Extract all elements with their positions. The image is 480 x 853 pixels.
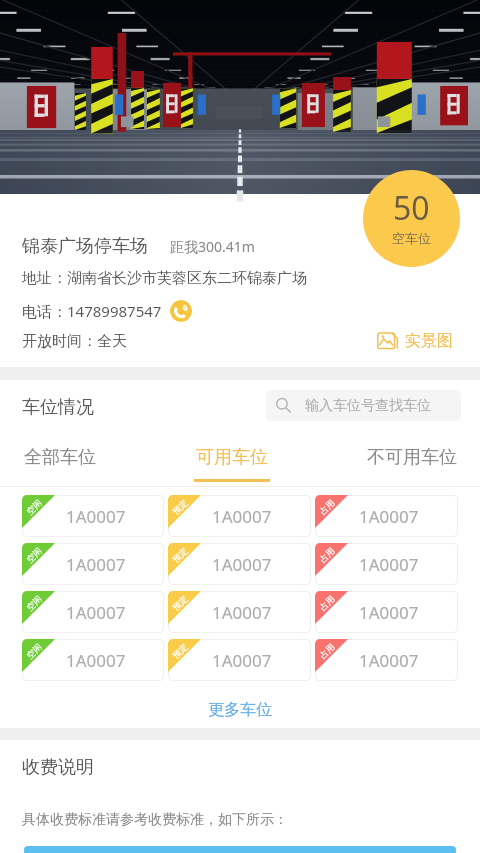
staticText: 1A0007 [212,601,272,624]
staticText: 电话：14789987547 [22,301,162,321]
button[interactable]: 占用 [315,639,458,681]
staticText: 占用 [318,594,337,613]
button[interactable]: 更多车位 [208,700,272,720]
staticText: 收费说明 [22,756,94,779]
staticText: 全部车位 [24,446,96,469]
button[interactable]: 空闲 [22,495,164,537]
staticText: 1A0007 [359,505,419,528]
staticText: 1A0007 [66,553,126,576]
staticText: 占用 [318,546,337,565]
staticText: 1A0007 [212,649,272,672]
staticText: 占用 [318,642,337,661]
staticText: 可用车位 [196,446,268,469]
button[interactable]: 占用 [315,543,458,585]
staticText: 1A0007 [212,553,272,576]
button[interactable]: 空闲 [22,639,164,681]
button[interactable]: 空闲 [22,591,164,633]
staticText: 实景图 [405,331,453,351]
button[interactable]: 不可用车位 [366,446,458,482]
staticText: 1A0007 [66,505,126,528]
staticText: 空闲 [25,546,44,565]
button[interactable]: 预定 [168,543,311,585]
button[interactable]: 占用 [315,495,458,537]
button[interactable]: 全部车位 [22,446,98,482]
staticText: 1A0007 [212,505,272,528]
staticText: 开放时间：全天 [22,332,127,351]
button[interactable]: Call [170,300,192,322]
staticText: 不可用车位 [367,446,457,469]
staticText: 空闲 [25,642,44,661]
button[interactable]: 可用车位 [194,446,270,482]
staticText: 车位情况 [22,396,94,419]
staticText: 预定 [171,498,190,517]
staticText: 预定 [171,642,190,661]
staticText: 1A0007 [66,601,126,624]
staticText: 占用 [318,498,337,517]
staticText: 预定 [171,546,190,565]
staticText: 1A0007 [359,553,419,576]
button[interactable]: 预定 [168,495,311,537]
button[interactable]: 实景图 [377,330,453,351]
staticText: 1A0007 [359,601,419,624]
button[interactable]: 预定 [168,639,311,681]
staticText: 1A0007 [66,649,126,672]
staticText: 地址：湖南省长沙市芙蓉区东二环锦泰广场 [22,269,307,288]
button[interactable]: 预定 [168,591,311,633]
staticText: 1A0007 [359,649,419,672]
staticText: 空车位 [392,230,431,246]
button[interactable]: 50 [363,170,460,267]
button[interactable]: 输入车位号查找车位 [266,390,461,421]
staticText: 锦泰广场停车场 [22,235,148,258]
staticText: 预定 [171,594,190,613]
staticText: 具体收费标准请参考收费标准，如下所示： [22,811,288,829]
staticText: 空闲 [25,498,44,517]
staticText: 距我300.41m [170,237,255,256]
button[interactable]: 占用 [315,591,458,633]
staticText: 空闲 [25,594,44,613]
staticText: 50 [393,186,430,230]
staticText: 输入车位号查找车位 [305,397,431,415]
button[interactable]: 空闲 [22,543,164,585]
